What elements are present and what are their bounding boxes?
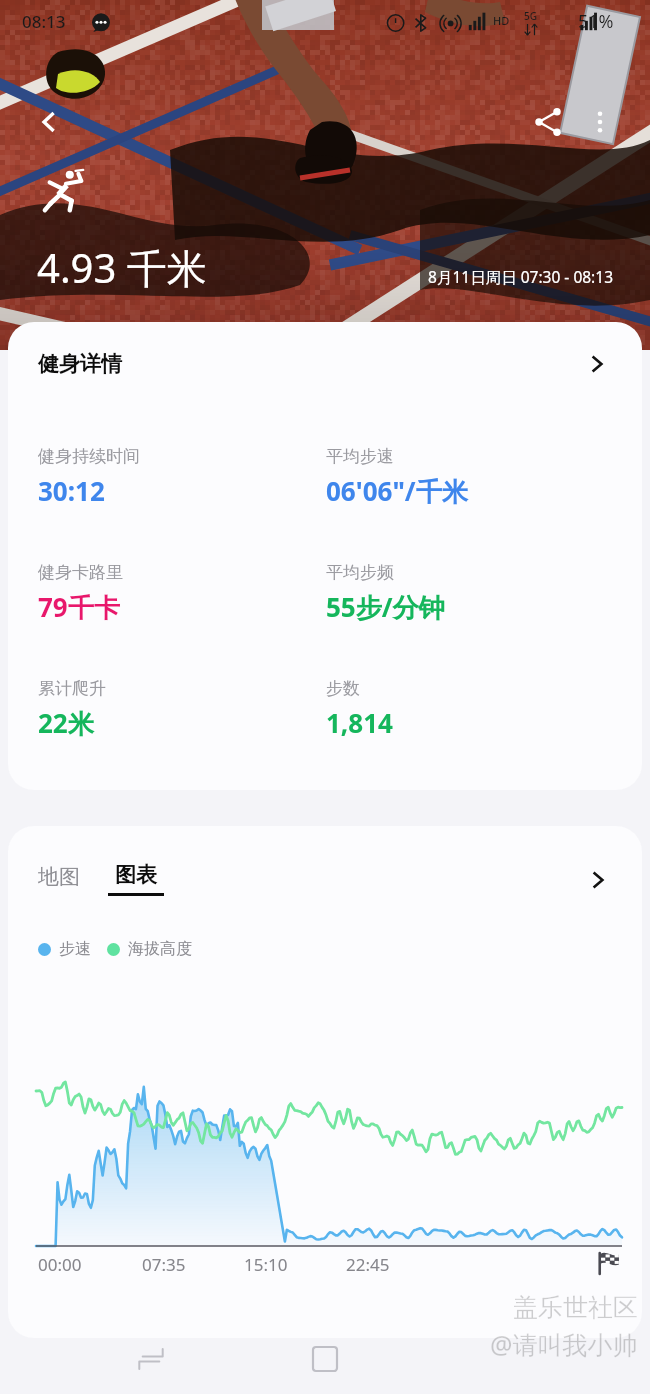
button[interactable]: Recents — [116, 1324, 186, 1394]
staticText: 步速 — [59, 939, 91, 959]
staticText: 健身持续时间 — [38, 446, 140, 467]
button[interactable]: 图表 — [108, 862, 164, 896]
button[interactable]: 健身详情 — [8, 322, 642, 406]
staticText: 22米 — [38, 705, 94, 741]
staticText: 图表 — [115, 862, 157, 888]
button[interactable]: 地图 — [32, 862, 86, 892]
staticText: 22:45 — [346, 1253, 390, 1276]
button[interactable]: Expand chart — [580, 862, 616, 898]
staticText: 06'06"/千米 — [326, 473, 468, 509]
staticText: 海拔高度 — [128, 939, 192, 959]
staticText: 1,814 — [326, 705, 393, 740]
staticText: 平均步频 — [326, 562, 394, 583]
staticText: 4.93 千米 — [37, 240, 207, 295]
staticText: 55步/分钟 — [326, 589, 445, 625]
staticText: 平均步速 — [326, 446, 394, 467]
staticText: 步数 — [326, 678, 360, 699]
staticText: HD — [493, 13, 510, 28]
staticText: 00:00 — [38, 1253, 82, 1276]
staticText: 健身卡路里 — [38, 562, 123, 583]
staticText: 51% — [578, 9, 614, 34]
staticText: 8月11日周日 07:30 - 08:13 — [250, 266, 613, 287]
staticText: @请叫我小帅 — [490, 1327, 638, 1361]
staticText: 5G — [524, 9, 537, 23]
button[interactable]: Share — [520, 94, 576, 150]
button[interactable]: More options — [572, 94, 628, 150]
staticText: 盖乐世社区 — [513, 1292, 638, 1323]
staticText: 地图 — [38, 864, 80, 890]
staticText: 07:35 — [142, 1253, 186, 1276]
staticText: 累计爬升 — [38, 678, 106, 699]
button[interactable]: Back — [22, 94, 78, 150]
button[interactable]: Home — [290, 1324, 360, 1394]
staticText: 15:10 — [244, 1253, 288, 1276]
staticText: 30:12 — [38, 473, 105, 508]
staticText: 健身详情 — [38, 351, 122, 377]
staticText: 08:13 — [22, 10, 66, 33]
staticText: 79千卡 — [38, 589, 120, 625]
